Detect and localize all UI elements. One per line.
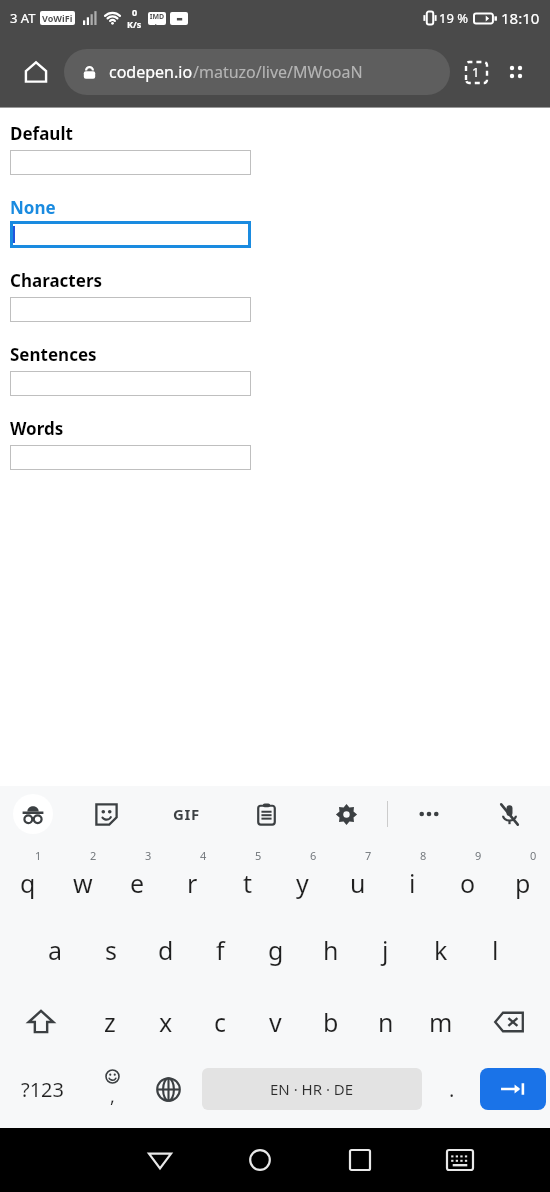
button[interactable]: Recents	[310, 1128, 410, 1192]
staticText: v	[269, 1005, 282, 1039]
staticText: GIF	[173, 804, 200, 824]
staticText: r	[187, 866, 198, 900]
staticText: 1	[472, 63, 480, 81]
button[interactable]: 4	[165, 842, 220, 914]
staticText: w	[73, 866, 93, 900]
staticText: b	[323, 1005, 339, 1039]
staticText: j	[382, 933, 389, 967]
staticText: VoWiFi	[42, 12, 73, 24]
button[interactable]: Shift	[0, 986, 82, 1058]
staticText: g	[268, 933, 284, 967]
button[interactable]: a	[27, 914, 83, 986]
button[interactable]: s	[83, 914, 138, 986]
staticText: Sentences	[10, 343, 97, 366]
button[interactable]: z	[82, 986, 138, 1058]
button[interactable]	[10, 150, 251, 175]
button[interactable]: EN · HR · DE	[202, 1068, 422, 1110]
button[interactable]: More options	[496, 52, 536, 92]
button[interactable]: d	[138, 914, 193, 986]
button[interactable]: 5	[220, 842, 275, 914]
button[interactable]: 9	[440, 842, 495, 914]
staticText: o	[460, 866, 476, 900]
button[interactable]	[10, 297, 251, 322]
staticText: 4	[200, 848, 207, 863]
button[interactable]: l	[468, 914, 523, 986]
button[interactable]: 8	[385, 842, 440, 914]
staticText: y	[296, 866, 309, 900]
button[interactable]: Emoji	[84, 1058, 140, 1120]
button[interactable]: 3	[110, 842, 165, 914]
staticText: ,	[110, 1084, 115, 1109]
button[interactable]: 7	[330, 842, 385, 914]
staticText: Default	[10, 122, 73, 145]
button[interactable]: 0	[495, 842, 550, 914]
staticText: 9	[475, 848, 482, 863]
staticText: d	[158, 933, 174, 967]
staticText: ?123	[21, 1076, 64, 1103]
staticText: t	[243, 866, 253, 900]
staticText: ▬	[176, 15, 183, 23]
button[interactable]: More	[388, 786, 469, 842]
staticText: 5	[255, 848, 262, 863]
staticText: e	[130, 866, 145, 900]
button[interactable]: j	[358, 914, 413, 986]
button[interactable]: Home	[14, 50, 58, 94]
staticText: f	[216, 933, 225, 967]
button[interactable]: Tabs	[456, 52, 496, 92]
button[interactable]: ?123	[0, 1058, 84, 1120]
button[interactable]: Hide keyboard	[410, 1128, 510, 1192]
button[interactable]: Backspace	[468, 986, 550, 1058]
staticText: q	[20, 866, 36, 900]
button[interactable]: x	[138, 986, 193, 1058]
staticText: 8	[420, 848, 427, 863]
staticText: a	[48, 933, 63, 967]
staticText: k	[434, 933, 448, 967]
staticText: c	[214, 1005, 227, 1039]
button[interactable]: c	[193, 986, 248, 1058]
staticText: IMDb	[148, 12, 166, 25]
button[interactable]: Clipboard	[226, 786, 306, 842]
staticText: 2	[90, 848, 97, 863]
button[interactable]: GIF	[146, 786, 226, 842]
button[interactable]: Enter	[480, 1068, 546, 1110]
staticText: 6	[310, 848, 317, 863]
button[interactable]: 2	[55, 842, 110, 914]
button[interactable]	[10, 445, 251, 470]
staticText: None	[10, 196, 56, 219]
button[interactable]: v	[248, 986, 303, 1058]
staticText: l	[492, 933, 499, 967]
staticText: u	[350, 866, 366, 900]
staticText: Characters	[10, 269, 103, 292]
button[interactable]: n	[358, 986, 413, 1058]
staticText: n	[378, 1005, 394, 1039]
button[interactable]: Back	[110, 1128, 210, 1192]
button[interactable]: Change language	[140, 1058, 196, 1120]
button[interactable]: h	[303, 914, 358, 986]
button[interactable]: Settings	[306, 786, 387, 842]
button[interactable]	[10, 371, 251, 396]
button[interactable]: 6	[275, 842, 330, 914]
button[interactable]: codepen.io	[64, 49, 450, 95]
button[interactable]: Home	[210, 1128, 310, 1192]
button[interactable]: m	[413, 986, 468, 1058]
button[interactable]: Voice input off	[469, 786, 550, 842]
staticText: 0	[132, 6, 138, 18]
staticText: K/s	[127, 18, 142, 30]
staticText: 3	[145, 848, 152, 863]
button[interactable]: k	[413, 914, 468, 986]
button[interactable]: .	[428, 1058, 476, 1120]
button[interactable]: f	[193, 914, 248, 986]
button[interactable]: 1	[0, 842, 55, 914]
staticText: 19 %	[439, 9, 469, 27]
staticText: 1	[35, 848, 42, 863]
staticText: EN · HR · DE	[270, 1079, 354, 1099]
staticText: 7	[365, 848, 372, 863]
button[interactable]: Incognito	[0, 786, 66, 842]
staticText: z	[104, 1005, 116, 1039]
button[interactable]: Stickers	[66, 786, 146, 842]
button[interactable]: g	[248, 914, 303, 986]
button[interactable]: b	[303, 986, 358, 1058]
staticText: /matuzo/live/MWooaN	[193, 61, 363, 83]
button[interactable]	[10, 221, 251, 248]
staticText: .	[449, 1076, 455, 1103]
